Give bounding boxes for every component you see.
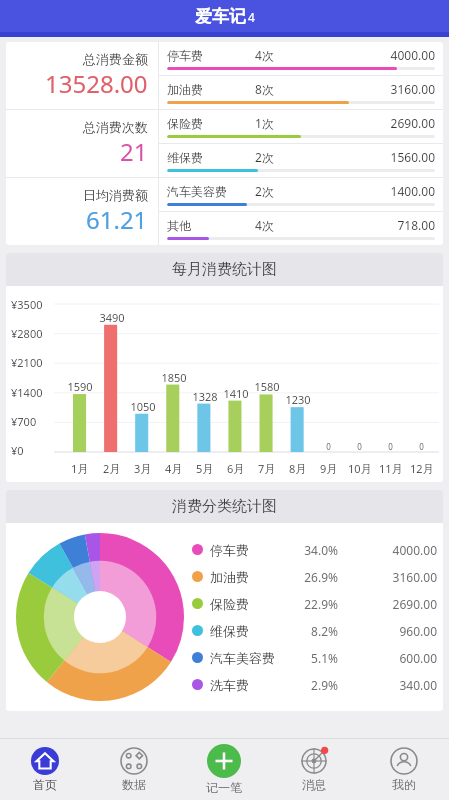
button[interactable]: 维保费 (159, 144, 443, 177)
staticText: 数据 (122, 777, 146, 792)
button[interactable]: 首页 (0, 738, 89, 800)
staticText: ¥1400 (11, 385, 43, 400)
staticText: 维保费 (210, 623, 296, 639)
staticText: 8次 (255, 81, 303, 97)
staticText: 停车费 (210, 542, 296, 558)
staticText: 4000.00 (338, 542, 437, 558)
staticText: 每月消费统计图 (172, 260, 277, 279)
staticText: 960.00 (338, 623, 437, 639)
staticText: 1580 (254, 379, 280, 394)
button[interactable]: 汽车美容费 (192, 644, 437, 671)
staticText: 首页 (33, 777, 57, 792)
staticText: ¥2800 (11, 326, 43, 341)
staticText: 3160.00 (303, 81, 435, 97)
staticText: 其他 (167, 218, 255, 233)
button[interactable]: 停车费 (159, 42, 443, 75)
staticText: 4 (248, 9, 255, 25)
staticText: 总消费金额 (83, 51, 148, 67)
staticText: 日均消费额 (83, 187, 148, 203)
staticText: 3490 (99, 310, 125, 325)
staticText: 12月 (410, 461, 434, 476)
staticText: 总消费次数 (83, 119, 148, 135)
staticText: 保险费 (210, 596, 296, 612)
staticText: 汽车美容费 (210, 650, 296, 666)
staticText: 22.9% (296, 596, 338, 612)
staticText: 4月 (165, 461, 183, 476)
staticText: 记一笔 (206, 780, 242, 795)
staticText: 2月 (103, 461, 121, 476)
staticText: 2690.00 (338, 596, 437, 612)
staticText: 61.21 (86, 203, 148, 236)
staticText: 10月 (348, 461, 372, 476)
staticText: 4000.00 (303, 47, 435, 63)
staticText: 5.1% (296, 650, 338, 666)
staticText: 7月 (258, 461, 276, 476)
button[interactable]: 其他 (159, 212, 443, 245)
button[interactable]: 消息 (269, 738, 359, 800)
staticText: 9月 (320, 461, 338, 476)
staticText: 爱车记 (195, 6, 246, 27)
staticText: 保险费 (167, 116, 255, 131)
staticText: 1328 (192, 389, 218, 404)
staticText: 汽车美容费 (167, 184, 255, 199)
staticText: 消费分类统计图 (172, 497, 277, 516)
staticText: 0 (419, 441, 424, 452)
button[interactable]: 我的 (359, 738, 449, 800)
staticText: 洗车费 (210, 677, 296, 693)
staticText: 13528.00 (45, 67, 148, 100)
staticText: ¥700 (11, 414, 37, 429)
staticText: 3月 (134, 461, 152, 476)
staticText: 2.9% (296, 677, 338, 693)
staticText: 1560.00 (303, 149, 435, 165)
staticText: 消息 (302, 777, 326, 792)
staticText: 8月 (289, 461, 307, 476)
staticText: 0 (388, 441, 393, 452)
staticText: 加油费 (167, 82, 255, 97)
staticText: 1月 (71, 461, 89, 476)
staticText: ¥0 (11, 443, 24, 458)
staticText: 1410 (223, 386, 249, 401)
staticText: 1850 (161, 370, 187, 385)
staticText: 26.9% (296, 569, 338, 585)
staticText: 5月 (196, 461, 214, 476)
button[interactable]: 数据 (89, 738, 179, 800)
staticText: 4次 (255, 47, 303, 63)
button[interactable]: 维保费 (192, 617, 437, 644)
button[interactable]: 洗车费 (192, 671, 437, 698)
button[interactable]: 加油费 (159, 76, 443, 109)
staticText: 0 (326, 441, 331, 452)
staticText: ¥3500 (11, 297, 43, 312)
staticText: 600.00 (338, 650, 437, 666)
staticText: ¥2100 (11, 355, 43, 370)
staticText: 21 (120, 135, 148, 168)
staticText: 0 (357, 441, 362, 452)
button[interactable]: 保险费 (159, 110, 443, 143)
staticText: 1230 (285, 392, 311, 407)
staticText: 1590 (67, 379, 93, 394)
staticText: 11月 (379, 461, 403, 476)
button[interactable]: 加油费 (192, 563, 437, 590)
staticText: 停车费 (167, 48, 255, 63)
button[interactable]: 总消费金额 (6, 42, 158, 109)
staticText: 1次 (255, 115, 303, 131)
button[interactable]: 记一笔 (179, 738, 269, 800)
staticText: 4次 (255, 217, 303, 233)
staticText: 2690.00 (303, 115, 435, 131)
button[interactable]: 保险费 (192, 590, 437, 617)
button[interactable]: 日均消费额 (6, 178, 158, 245)
staticText: 维保费 (167, 150, 255, 165)
button[interactable]: 汽车美容费 (159, 178, 443, 211)
staticText: 2次 (255, 149, 303, 165)
staticText: 2次 (255, 183, 303, 199)
staticText: 8.2% (296, 623, 338, 639)
staticText: 718.00 (303, 217, 435, 233)
staticText: 加油费 (210, 569, 296, 585)
button[interactable]: 停车费 (192, 536, 437, 563)
staticText: 34.0% (296, 542, 338, 558)
staticText: 340.00 (338, 677, 437, 693)
staticText: 1400.00 (303, 183, 435, 199)
staticText: 6月 (227, 461, 245, 476)
button[interactable]: 总消费次数 (6, 110, 158, 177)
staticText: 3160.00 (338, 569, 437, 585)
staticText: 1050 (130, 399, 156, 414)
